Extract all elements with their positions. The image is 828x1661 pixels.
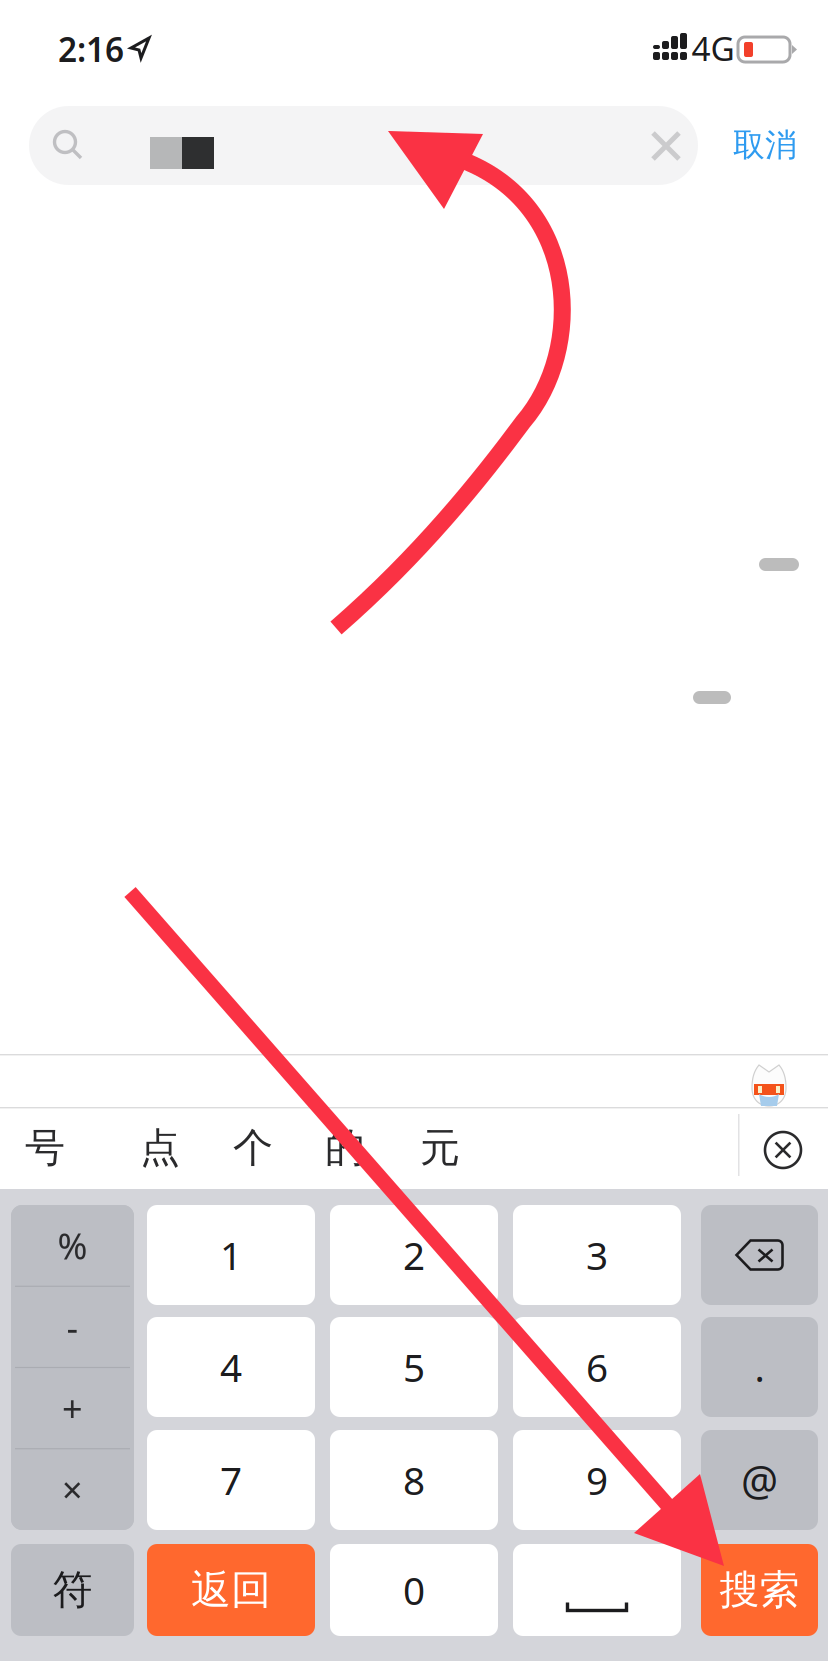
button[interactable]: 2 [330, 1205, 498, 1305]
staticText: 7 [220, 1454, 242, 1506]
button[interactable]: + [11, 1367, 134, 1449]
staticText: + [62, 1384, 83, 1432]
button[interactable]: 5 [330, 1317, 498, 1417]
button[interactable]: × [11, 1449, 134, 1530]
button[interactable]: 搜索 [701, 1544, 818, 1636]
staticText: 的 [325, 1123, 365, 1172]
staticText: . [754, 1341, 764, 1393]
staticText: 2 [403, 1229, 425, 1281]
staticText: 个 [233, 1123, 273, 1172]
button[interactable]: 7 [147, 1430, 315, 1530]
staticText: 元 [420, 1123, 460, 1172]
staticText: 1 [220, 1229, 242, 1281]
button[interactable]: 点 [130, 1118, 190, 1178]
button[interactable]: 9 [513, 1430, 681, 1530]
staticText: 点 [140, 1123, 180, 1172]
staticText: 9 [586, 1454, 608, 1506]
button[interactable]: 6 [513, 1317, 681, 1417]
staticText: 符 [52, 1565, 92, 1614]
button[interactable]: 4 [147, 1317, 315, 1417]
button[interactable]: 0 [330, 1544, 498, 1636]
button[interactable]: 的 [315, 1118, 375, 1178]
button[interactable]: 8 [330, 1430, 498, 1530]
button[interactable]: Dismiss keyboard [745, 1112, 821, 1188]
button[interactable]: 符 [11, 1544, 134, 1636]
staticText: @ [741, 1453, 778, 1507]
button[interactable]: 返回 [147, 1544, 315, 1636]
staticText: 取消 [733, 125, 797, 165]
staticText: 号 [25, 1123, 65, 1172]
button[interactable]: 1 [147, 1205, 315, 1305]
staticText: 返回 [191, 1565, 271, 1614]
staticText: 4G [691, 26, 734, 70]
button[interactable]: . [701, 1317, 818, 1417]
staticText: 2:16 [58, 27, 124, 71]
staticText: 0 [403, 1564, 425, 1616]
button[interactable]: @ [701, 1430, 818, 1530]
button[interactable]: 元 [410, 1118, 470, 1178]
staticText: 5 [403, 1341, 425, 1393]
staticText: 4 [220, 1341, 242, 1393]
staticText: 3 [586, 1229, 608, 1281]
button[interactable]: 取消 [710, 110, 820, 180]
button[interactable]: 个 [223, 1118, 283, 1178]
staticText: - [66, 1303, 78, 1351]
staticText: × [62, 1465, 83, 1513]
button[interactable]: % [11, 1205, 134, 1286]
button[interactable]: 3 [513, 1205, 681, 1305]
staticText: 搜索 [719, 1565, 799, 1614]
button[interactable]: - [11, 1286, 134, 1367]
staticText: 6 [586, 1341, 608, 1393]
button[interactable]: Space [513, 1544, 681, 1636]
button[interactable]: 号 [15, 1118, 75, 1178]
staticText: % [57, 1222, 87, 1269]
staticText: 8 [403, 1454, 425, 1506]
button[interactable]: Delete [701, 1205, 818, 1305]
